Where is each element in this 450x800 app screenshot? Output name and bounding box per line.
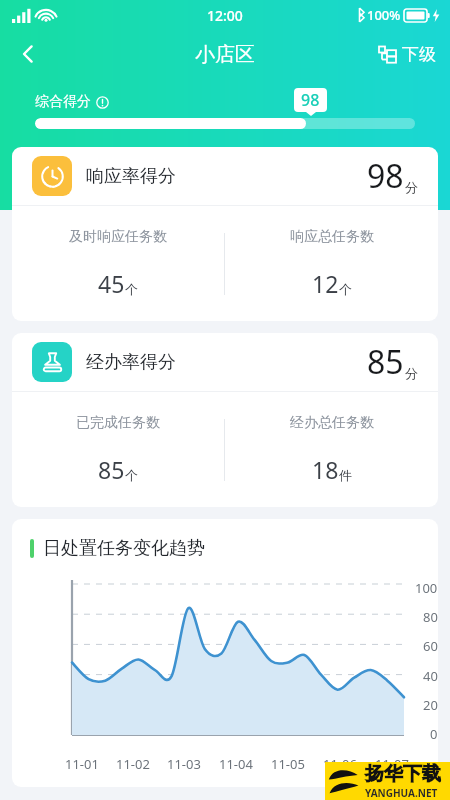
staticText: 0 [430,725,438,743]
staticText: 100% [367,6,401,24]
staticText: 分 [405,365,418,381]
staticText: 40 [423,667,438,685]
button[interactable]: 响应率得分 [12,147,438,321]
staticText: 11-01 [65,755,99,773]
staticText: 12 [312,268,339,299]
staticText: 小店区 [195,42,255,67]
staticText: 分 [405,179,418,195]
staticText: 11-06 [323,755,357,773]
staticText: 11-02 [116,755,150,773]
staticText: 85 [367,340,404,384]
staticText: 及时响应任务数 [69,228,167,246]
staticText: 响应率得分 [86,165,176,188]
staticText: 已完成任务数 [76,414,160,432]
staticText: 下级 [402,44,436,65]
button[interactable]: Back [6,32,50,76]
staticText: 100 [415,579,438,597]
staticText: 11-04 [219,755,253,773]
staticText: 经办总任务数 [290,414,374,432]
staticText: 11-05 [271,755,305,773]
staticText: 经办率得分 [86,351,176,374]
staticText: 12:00 [207,6,243,25]
staticText: 个 [125,281,138,297]
staticText: 60 [423,637,438,655]
staticText: 件 [339,467,352,483]
staticText: 扬华下载 [365,762,441,786]
staticText: 个 [125,467,138,483]
button[interactable]: 下级 [374,38,440,71]
staticText: 11-07 [375,755,409,773]
staticText: 综合得分 [35,93,91,111]
staticText: 45 [98,268,125,299]
staticText: 80 [423,608,438,626]
staticText: 日处置任务变化趋势 [43,537,205,560]
button[interactable]: 经办率得分 [12,333,438,507]
staticText: 85 [98,454,125,485]
staticText: 11-03 [167,755,201,773]
staticText: 98 [301,89,320,111]
staticText: 个 [339,281,352,297]
staticText: 18 [312,454,339,485]
staticText: 响应总任务数 [290,228,374,246]
staticText: 20 [423,696,438,714]
staticText: 98 [367,154,404,198]
staticText: YANGHUA.NET [365,786,438,800]
